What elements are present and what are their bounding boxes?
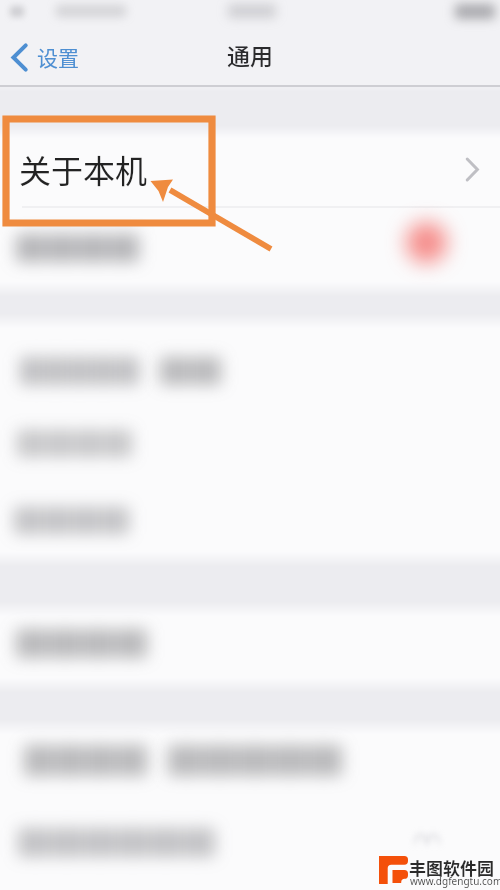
button[interactable] [0, 400, 500, 472]
staticText: 关于本机 [19, 146, 148, 192]
button[interactable] [0, 207, 500, 287]
staticText: 通用 [227, 38, 273, 71]
button[interactable] [0, 610, 500, 685]
button[interactable] [0, 478, 500, 550]
button[interactable] [0, 806, 500, 882]
button[interactable] [0, 726, 500, 804]
button[interactable] [0, 322, 500, 397]
staticText: 设置 [37, 42, 79, 72]
staticText: 丰图软件园 [409, 855, 494, 880]
button[interactable]: 关于本机 [0, 132, 500, 206]
button[interactable]: 设置 [0, 28, 120, 84]
staticText: www.dgfengtu.com [410, 874, 500, 888]
